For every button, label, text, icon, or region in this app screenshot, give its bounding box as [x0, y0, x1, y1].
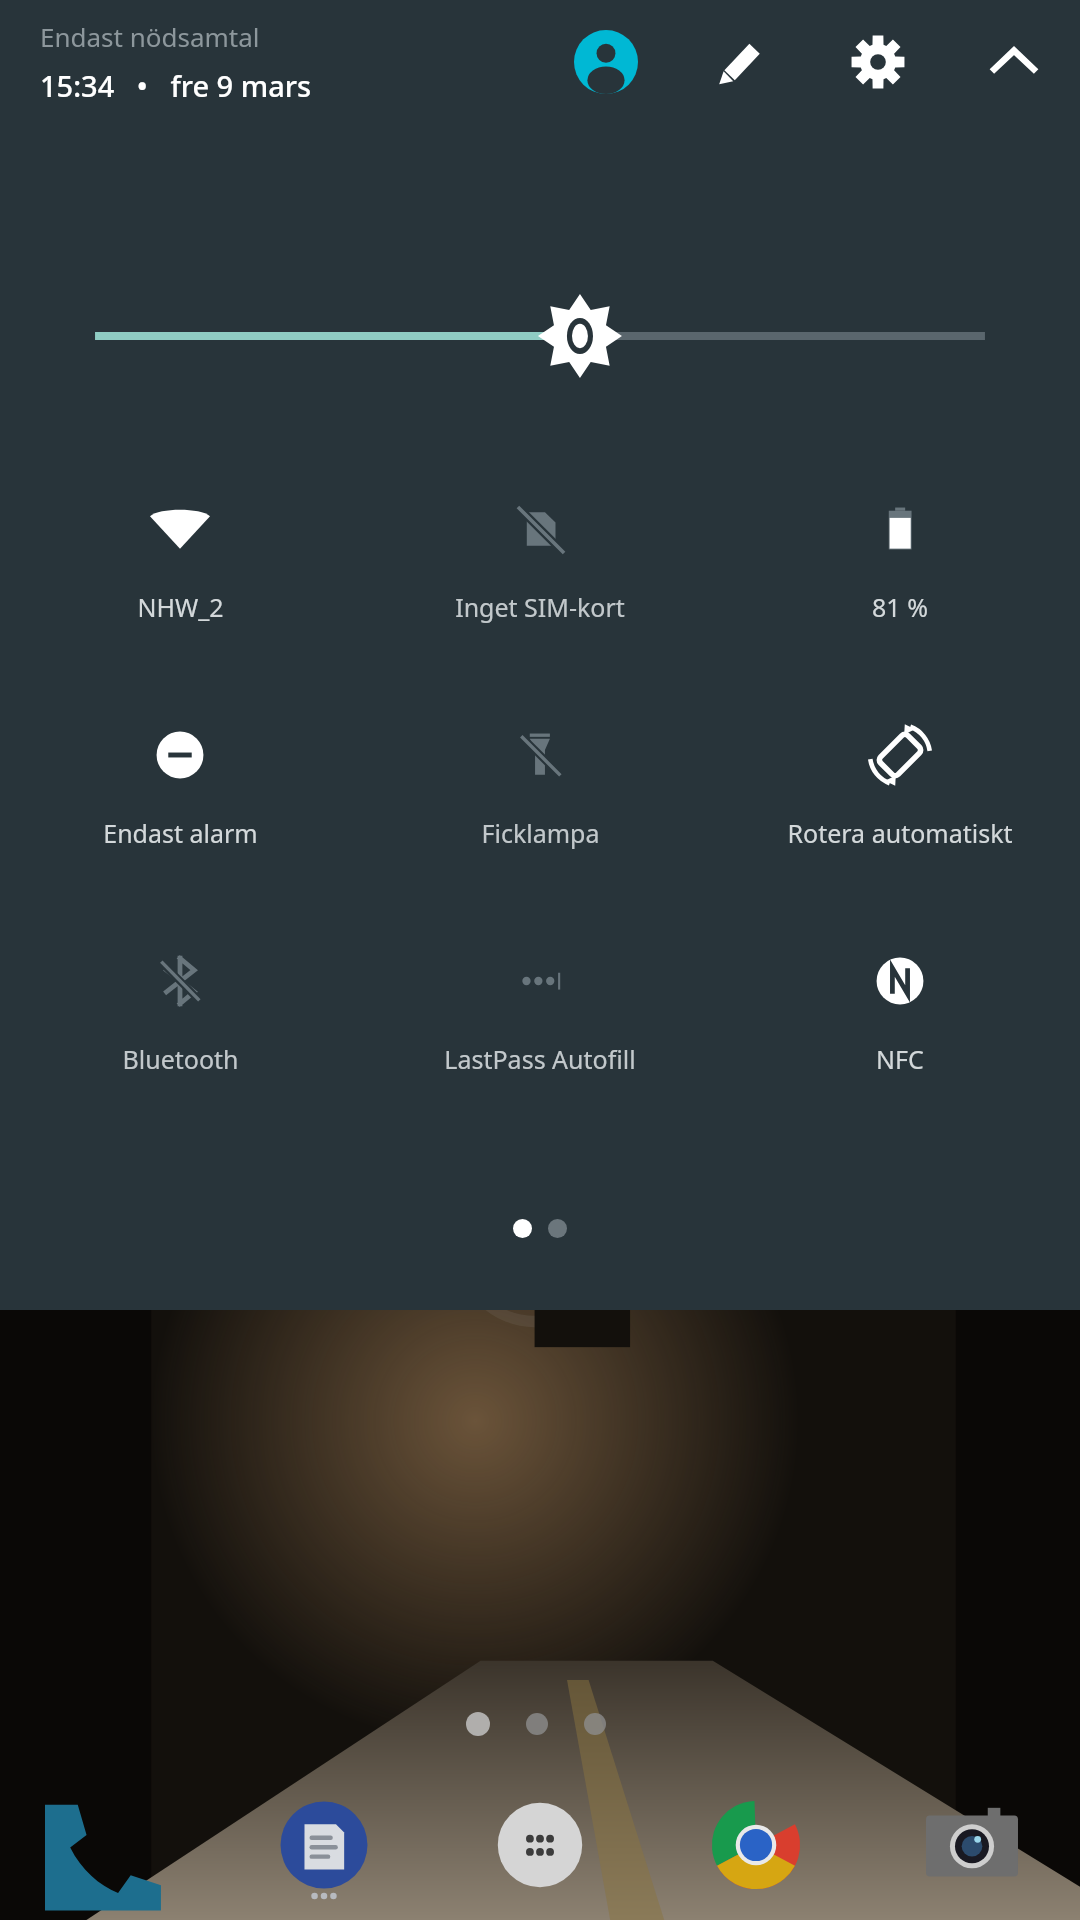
staticText: 15:34 • fre 9 mars	[40, 66, 312, 105]
staticText: NFC	[876, 1042, 924, 1076]
button[interactable]: Chrome	[648, 1770, 864, 1920]
button[interactable]: Phone	[0, 1770, 216, 1920]
button[interactable]: Collapse	[974, 22, 1054, 102]
staticText: Inget SIM-kort	[455, 590, 625, 624]
staticText: Bluetooth	[122, 1042, 239, 1076]
staticText: Ficklampa	[481, 816, 600, 850]
button[interactable]: NHW_2	[0, 496, 360, 624]
button[interactable]: Messages	[216, 1770, 432, 1920]
button[interactable]: LastPass Autofill	[360, 948, 720, 1076]
staticText: Endast nödsamtal	[40, 19, 260, 54]
button[interactable]: Rotera automatiskt	[720, 722, 1080, 850]
button[interactable]: NFC	[720, 948, 1080, 1076]
button[interactable]: Ficklampa	[360, 722, 720, 850]
button[interactable]: User profile	[566, 22, 646, 102]
staticText: Rotera automatiskt	[787, 816, 1013, 850]
staticText: NHW_2	[137, 590, 224, 624]
button[interactable]: Inget SIM-kort	[360, 496, 720, 624]
staticText: LastPass Autofill	[444, 1042, 636, 1076]
staticText: Endast alarm	[103, 816, 258, 850]
button[interactable]: Edit tiles	[700, 22, 780, 102]
staticText: 81 %	[872, 590, 928, 624]
button[interactable]: Brightness	[0, 288, 1080, 384]
button[interactable]: Settings	[838, 22, 918, 102]
button[interactable]: 81 %	[720, 496, 1080, 624]
button[interactable]: All apps	[432, 1770, 648, 1920]
button[interactable]: Endast alarm	[0, 722, 360, 850]
button[interactable]: Camera	[864, 1770, 1080, 1920]
button[interactable]: Bluetooth	[0, 948, 360, 1076]
